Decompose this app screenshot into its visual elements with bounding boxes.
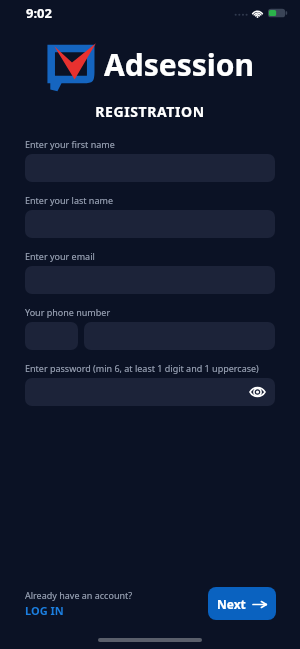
staticText: Enter your email bbox=[25, 250, 95, 262]
button[interactable]: Show password bbox=[25, 378, 275, 406]
staticText: Enter your first name bbox=[25, 138, 115, 150]
button[interactable]: LOG IN bbox=[25, 603, 64, 618]
staticText: Next bbox=[217, 596, 246, 612]
staticText: Already have an account? bbox=[25, 589, 133, 601]
staticText: REGISTRATION bbox=[0, 102, 300, 121]
button[interactable]: Next bbox=[208, 587, 276, 620]
button[interactable]: Show password bbox=[247, 382, 267, 402]
staticText: LOG IN bbox=[25, 603, 64, 618]
staticText: Enter password (min 6, at least 1 digit … bbox=[25, 362, 259, 374]
staticText: Your phone number bbox=[25, 306, 111, 318]
staticText: Enter your last name bbox=[25, 194, 113, 206]
button[interactable]: Country code bbox=[25, 322, 78, 350]
staticText: 9:02 bbox=[26, 4, 52, 22]
staticText: Adsession bbox=[104, 44, 255, 85]
